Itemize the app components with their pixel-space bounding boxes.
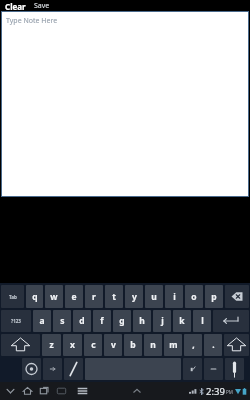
staticText: b: [130, 339, 136, 351]
button[interactable]: Tab: [1, 285, 24, 308]
button[interactable]: Settings: [22, 358, 41, 380]
button[interactable]: Home: [19, 383, 36, 399]
button[interactable]: p: [205, 285, 223, 308]
button[interactable]: g: [113, 310, 131, 332]
button[interactable]: t: [105, 285, 123, 308]
button[interactable]: l: [193, 310, 211, 332]
button[interactable]: j: [153, 310, 171, 332]
button[interactable]: .: [204, 334, 222, 356]
button[interactable]: y: [125, 285, 143, 308]
button[interactable]: Keyboard: [53, 383, 70, 399]
staticText: ,: [192, 339, 195, 351]
button[interactable]: x: [63, 334, 82, 356]
staticText: Type Note Here: [6, 16, 58, 26]
button[interactable]: b: [124, 334, 142, 356]
staticText: i: [173, 291, 176, 303]
button[interactable]: h: [133, 310, 151, 332]
staticText: t: [112, 291, 116, 303]
staticText: Clear: [5, 1, 26, 10]
button[interactable]: c: [84, 334, 102, 356]
staticText: h: [139, 315, 145, 327]
button[interactable]: Shift: [1, 334, 40, 356]
button[interactable]: ,: [184, 334, 202, 356]
button[interactable]: m: [164, 334, 182, 356]
staticText: l: [201, 315, 204, 327]
button[interactable]: ?123: [1, 310, 31, 332]
button[interactable]: w: [45, 285, 63, 308]
button[interactable]: u: [145, 285, 163, 308]
button[interactable]: d: [73, 310, 91, 332]
button[interactable]: s: [53, 310, 71, 332]
button[interactable]: Save: [32, 0, 52, 11]
button[interactable]: Type Note Here: [1, 11, 249, 197]
staticText: PM: [226, 389, 233, 395]
staticText: j: [161, 315, 164, 327]
staticText: d: [79, 315, 85, 327]
staticText: Tab: [9, 294, 17, 300]
button[interactable]: o: [185, 285, 203, 308]
button[interactable]: q: [26, 285, 43, 308]
button[interactable]: Dash: [204, 358, 223, 380]
button[interactable]: Clear: [3, 0, 28, 11]
staticText: w: [50, 291, 58, 303]
staticText: ?123: [11, 318, 21, 324]
staticText: .: [212, 339, 215, 351]
button[interactable]: Recent apps: [36, 383, 53, 399]
button[interactable]: a: [33, 310, 51, 332]
staticText: n: [150, 339, 156, 351]
button[interactable]: n: [144, 334, 162, 356]
staticText: x: [70, 339, 75, 351]
staticText: 2:39: [206, 385, 225, 398]
button[interactable]: Menu: [74, 383, 91, 399]
staticText: f: [100, 315, 104, 327]
button[interactable]: e: [65, 285, 83, 308]
staticText: Save: [34, 1, 50, 10]
staticText: k: [179, 315, 185, 327]
button[interactable]: f: [93, 310, 111, 332]
button[interactable]: Hide keyboard: [2, 383, 19, 399]
button[interactable]: k: [173, 310, 191, 332]
staticText: p: [211, 291, 217, 303]
button[interactable]: Next field: [183, 358, 202, 380]
button[interactable]: r: [85, 285, 103, 308]
button[interactable]: Enter: [213, 310, 249, 332]
staticText: g: [119, 315, 125, 327]
staticText: a: [39, 315, 45, 327]
button[interactable]: i: [165, 285, 183, 308]
staticText: u: [151, 291, 157, 303]
staticText: y: [132, 291, 137, 303]
button[interactable]: v: [104, 334, 122, 356]
staticText: r: [92, 291, 96, 303]
button[interactable]: Shift: [224, 334, 249, 356]
staticText: s: [60, 315, 65, 327]
button[interactable]: Emoji: [43, 358, 62, 380]
staticText: e: [71, 291, 77, 303]
staticText: z: [49, 339, 54, 351]
staticText: o: [191, 291, 197, 303]
staticText: v: [111, 339, 116, 351]
button[interactable]: Voice input: [225, 358, 244, 380]
button[interactable]: Handwriting: [64, 358, 83, 380]
staticText: m: [169, 339, 178, 351]
staticText: c: [91, 339, 96, 351]
button[interactable]: Backspace: [225, 285, 249, 308]
staticText: q: [32, 291, 38, 303]
button[interactable]: Status: [187, 385, 248, 398]
button[interactable]: z: [42, 334, 61, 356]
